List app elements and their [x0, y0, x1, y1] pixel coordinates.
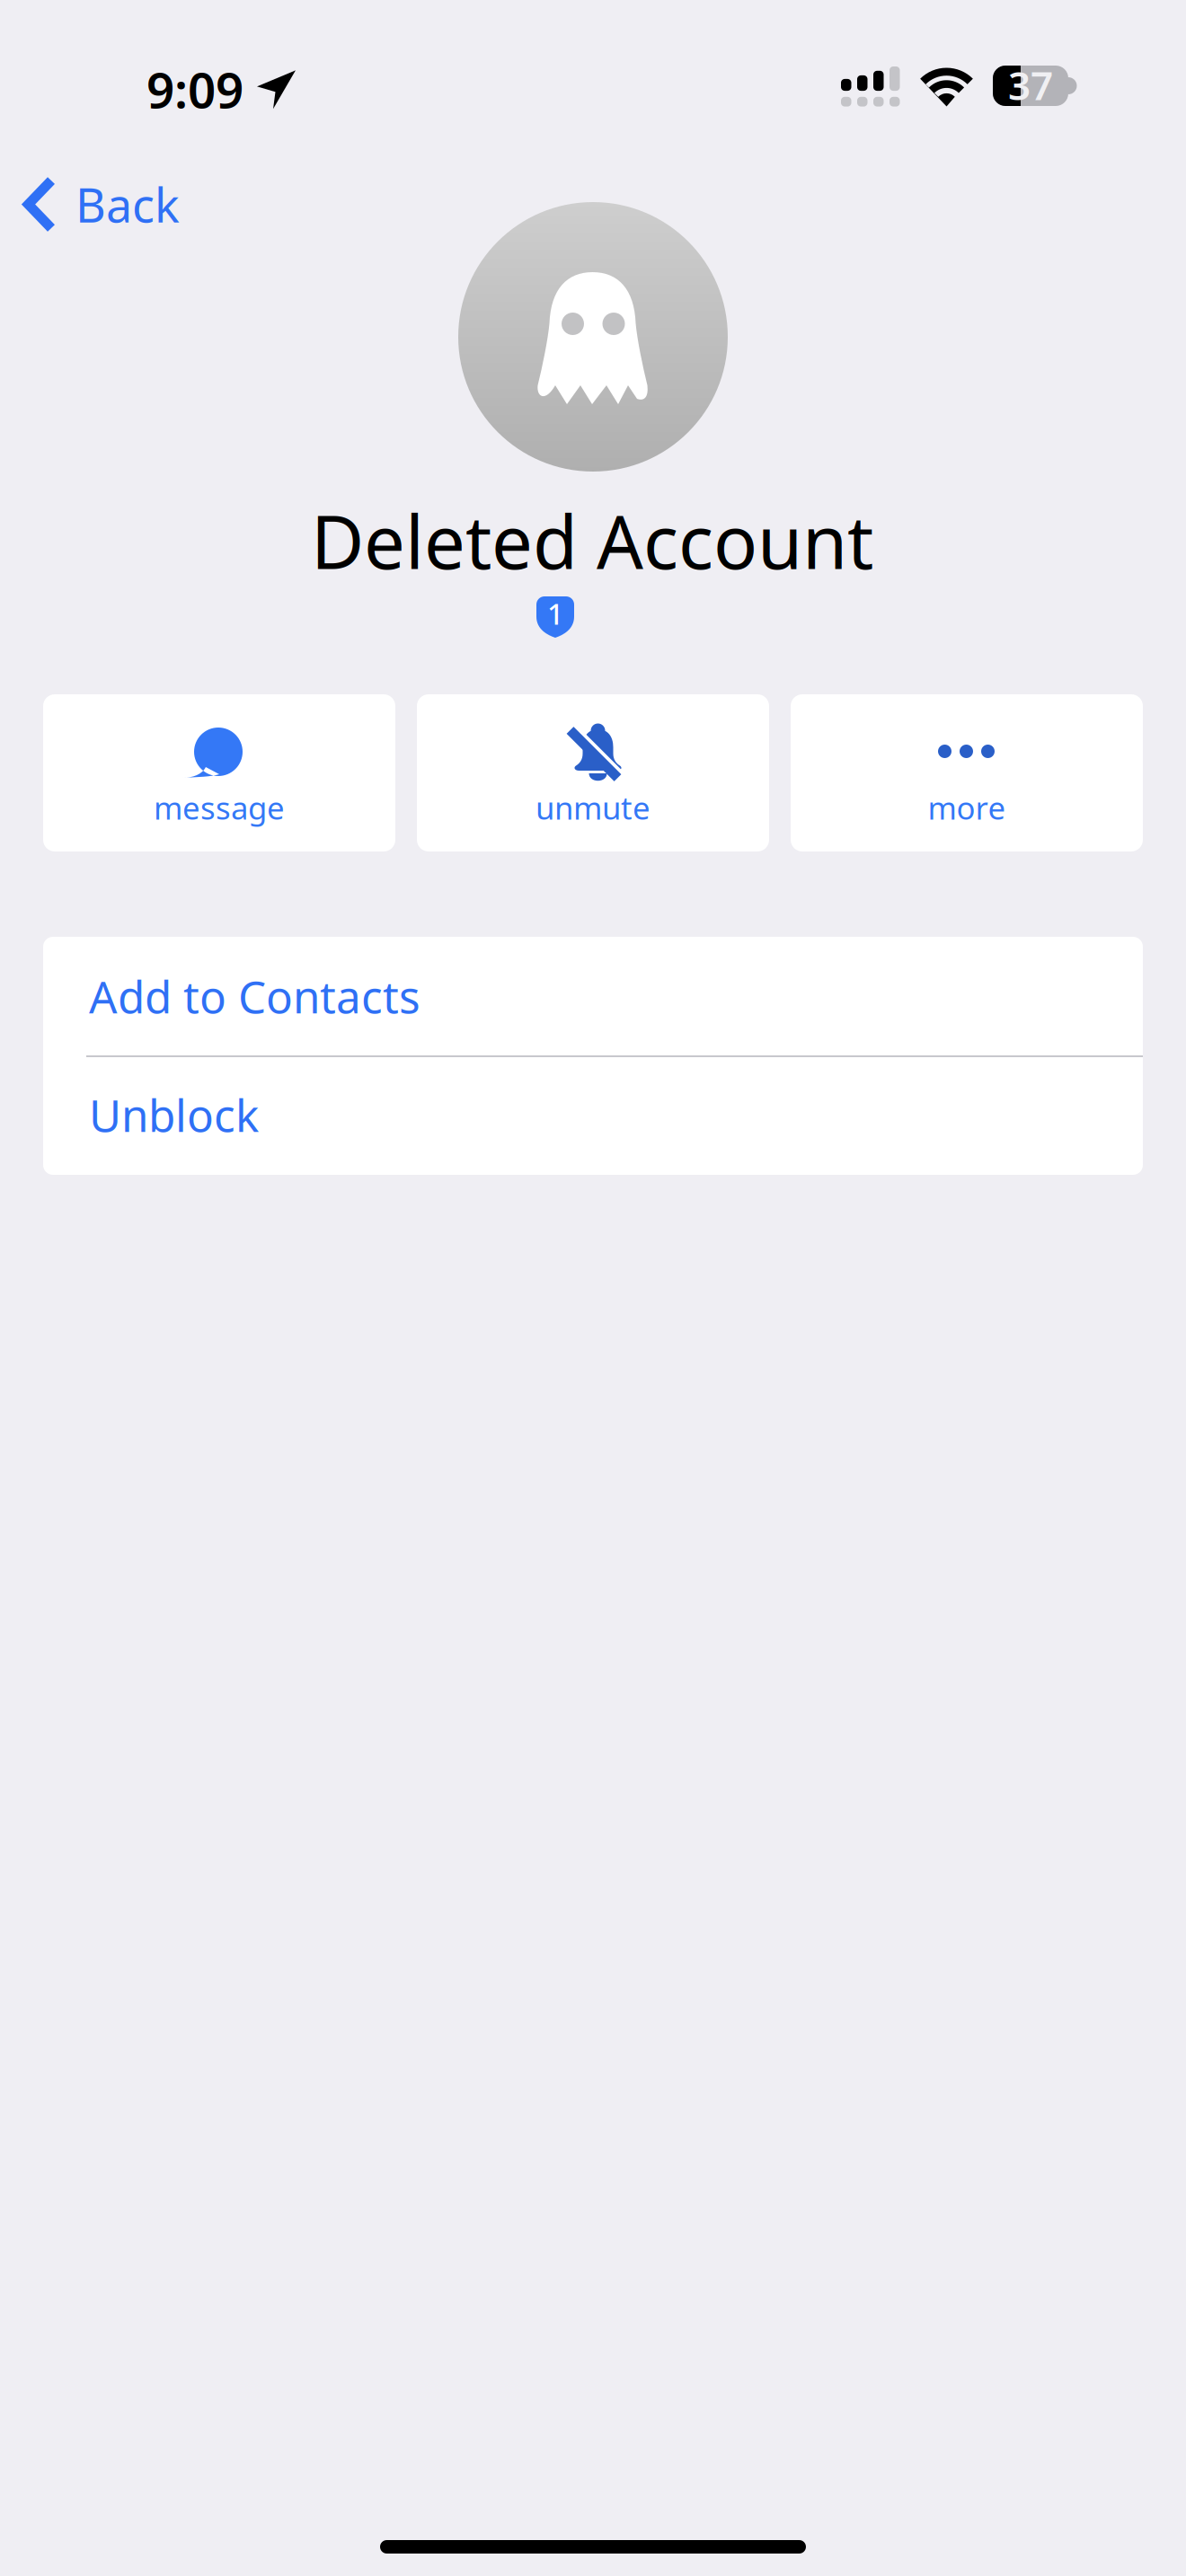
staticText: Add to Contacts: [89, 967, 420, 1025]
button[interactable]: Back: [2, 157, 203, 252]
staticText: Back: [75, 173, 180, 235]
button[interactable]: Add to Contacts: [43, 937, 1143, 1055]
button[interactable]: Unblock: [43, 1055, 1143, 1174]
staticText: 9:09: [146, 57, 243, 122]
button[interactable]: message: [43, 694, 395, 851]
button[interactable]: unmute: [417, 694, 769, 851]
staticText: 37: [1008, 59, 1053, 111]
staticText: more: [928, 787, 1006, 828]
button[interactable]: more: [791, 694, 1143, 851]
staticText: Unblock: [89, 1085, 259, 1144]
staticText: message: [154, 787, 285, 828]
staticText: 1: [547, 594, 563, 633]
staticText: Deleted Account: [311, 492, 873, 589]
staticText: unmute: [535, 787, 651, 828]
